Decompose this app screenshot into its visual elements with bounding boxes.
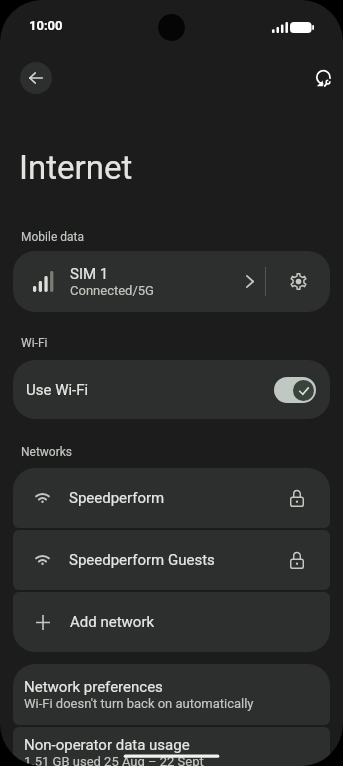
- staticText: Network preferences: [24, 678, 163, 696]
- button[interactable]: Network preferences: [13, 664, 330, 725]
- staticText: 1.51 GB used 25 Aug – 22 Sept: [24, 754, 204, 766]
- staticText: Add network: [70, 613, 155, 631]
- staticText: Speedperform Guests: [69, 551, 215, 569]
- staticText: SIM 1: [70, 265, 109, 283]
- staticText: Speedperform: [69, 489, 165, 507]
- staticText: Wi-Fi: [21, 336, 48, 350]
- staticText: 10:00: [29, 18, 63, 33]
- button[interactable]: SIM 1: [13, 251, 265, 312]
- button[interactable]: Fix connectivity: [303, 58, 343, 98]
- staticText: Use Wi-Fi: [26, 381, 89, 399]
- button[interactable]: Use Wi-Fi: [13, 360, 330, 419]
- staticText: Wi-Fi doesn't turn back on automatically: [24, 696, 254, 711]
- staticText: Mobile data: [21, 230, 84, 244]
- button[interactable]: Back: [20, 62, 52, 94]
- staticText: Internet: [19, 148, 133, 187]
- button[interactable]: Add network: [13, 592, 330, 652]
- staticText: Non-operator data usage: [24, 736, 190, 754]
- button[interactable]: Speedperform Guests: [13, 530, 330, 590]
- staticText: Networks: [21, 445, 73, 459]
- button[interactable]: Speedperform: [13, 468, 330, 528]
- button[interactable]: SIM settings: [266, 251, 330, 312]
- staticText: Connected/5G: [70, 283, 154, 298]
- button[interactable]: Non-operator data usage: [13, 727, 330, 766]
